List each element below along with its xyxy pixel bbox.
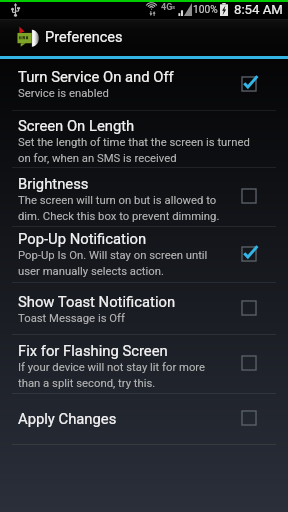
staticText: Pop-Up Is On. Will stay on screen until … — [18, 249, 208, 277]
staticText: If your device will not stay lit for mor… — [18, 361, 206, 389]
staticText: Screen On Length — [18, 117, 135, 134]
staticText: Set the length of time that the screen i… — [18, 136, 250, 164]
button[interactable]: Screen On Length — [0, 111, 288, 167]
button[interactable]: Toggle Brightness — [237, 184, 261, 208]
button[interactable]: Apply Changes — [0, 394, 288, 444]
staticText: 100% — [193, 4, 218, 16]
staticText: 4G — [161, 2, 173, 13]
staticText: 8:54 AM — [234, 2, 283, 17]
staticText: Toast Message is Off — [18, 312, 125, 325]
button[interactable]: Toggle Pop-Up Notification — [237, 242, 261, 266]
staticText: Show Toast Notification — [18, 293, 176, 310]
button[interactable]: Pop-Up Notification — [0, 227, 288, 282]
staticText: s — [172, 3, 176, 10]
staticText: The screen will turn on but is allowed t… — [18, 194, 220, 222]
staticText: Preferences — [45, 29, 123, 46]
button[interactable]: Toggle Turn Service On and Off — [237, 72, 261, 96]
staticText: Service is enabled — [18, 87, 109, 100]
button[interactable]: Toggle Show Toast Notification — [237, 296, 261, 320]
button[interactable]: Brightness — [0, 168, 288, 226]
staticText: Pop-Up Notification — [18, 230, 147, 247]
button[interactable]: Toggle Fix for Flashing Screen — [237, 351, 261, 375]
button[interactable]: Turn Service On and Off — [0, 59, 288, 110]
button[interactable]: Show Toast Notification — [0, 283, 288, 334]
staticText: Turn Service On and Off — [18, 68, 174, 85]
button[interactable]: Fix for Flashing Screen — [0, 335, 288, 393]
button[interactable]: Toggle Apply Changes — [237, 406, 261, 430]
button[interactable]: Preferences — [0, 20, 288, 56]
staticText: Apply Changes — [18, 410, 117, 427]
staticText: Brightness — [18, 175, 89, 192]
staticText: Fix for Flashing Screen — [18, 342, 168, 359]
